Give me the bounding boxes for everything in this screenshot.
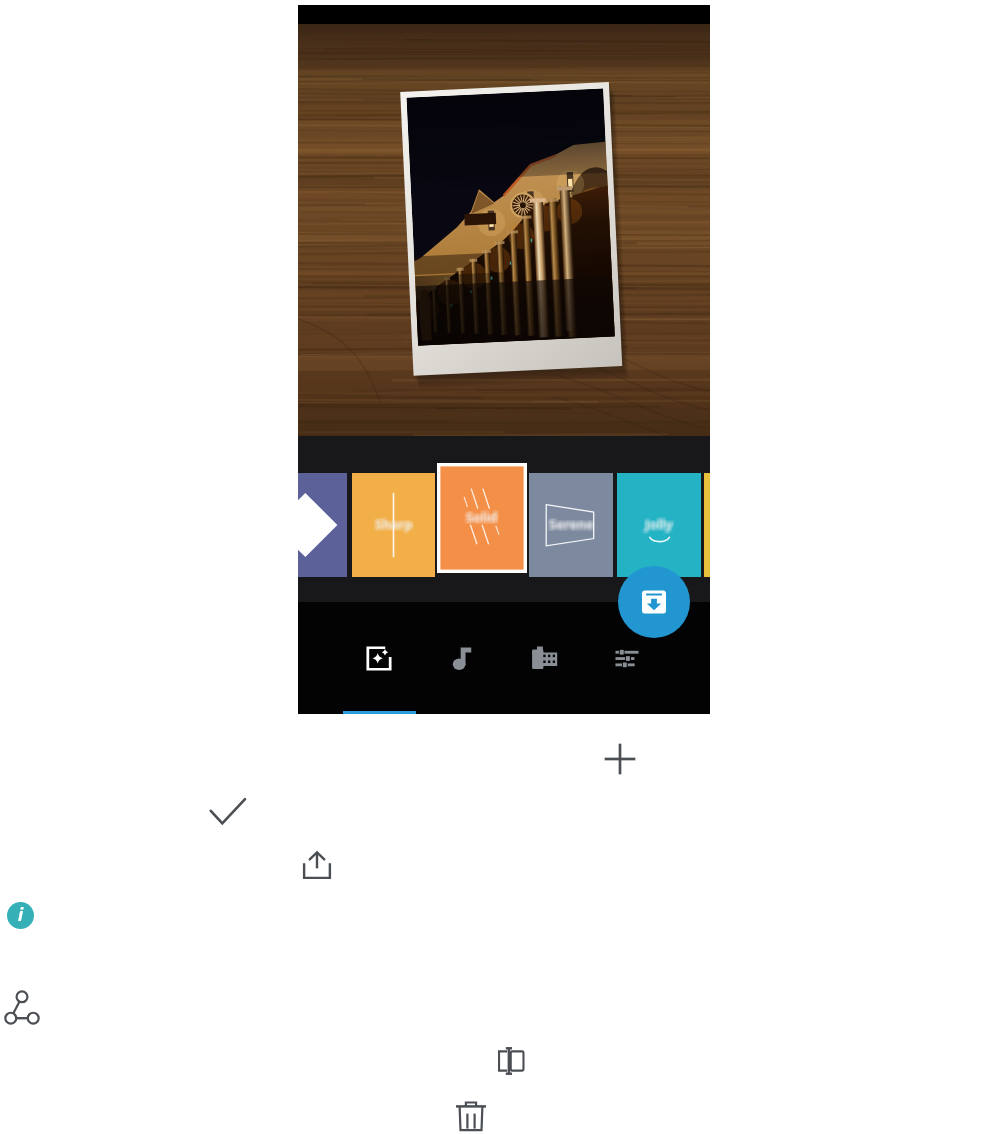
staticText: Solid — [464, 509, 496, 527]
staticText: Sharp — [376, 514, 414, 532]
button[interactable]: Info — [7, 902, 34, 929]
staticText: Sharp — [374, 514, 412, 532]
staticText: Sharp — [373, 515, 411, 533]
staticText: Serene — [549, 514, 594, 532]
staticText: Sharp — [374, 517, 412, 535]
staticText: Jolly — [646, 515, 674, 533]
staticText: Jolly — [645, 513, 673, 531]
staticText: Jolly — [646, 514, 674, 532]
staticText: Jolly — [644, 516, 672, 534]
button[interactable]: Done — [210, 798, 246, 834]
staticText: Solid — [466, 509, 498, 527]
button[interactable]: Adjust — [586, 602, 668, 714]
staticText: Solid — [468, 510, 500, 528]
staticText: Solid — [468, 508, 500, 526]
staticText: Sharp — [377, 516, 415, 534]
staticText: Solid — [464, 510, 496, 528]
staticText: Sharp — [373, 514, 411, 532]
staticText: Sharp — [374, 515, 412, 533]
staticText: Sharp — [377, 513, 415, 531]
staticText: Jolly — [643, 515, 671, 533]
staticText: Solid — [465, 508, 497, 526]
staticText: Sharp — [377, 515, 415, 533]
button[interactable]: Share — [303, 851, 331, 879]
staticText: Solid — [467, 509, 499, 527]
button[interactable]: Serene — [529, 473, 613, 577]
staticText: Solid — [467, 507, 499, 525]
staticText: Jolly — [645, 517, 673, 535]
staticText: Solid — [465, 506, 497, 524]
button[interactable]: Sharp — [352, 473, 435, 577]
button[interactable]: Gallery — [503, 602, 585, 714]
button[interactable]: Music — [421, 602, 503, 714]
staticText: Solid — [467, 506, 499, 524]
staticText: Jolly — [643, 517, 671, 535]
staticText: Jolly — [643, 516, 671, 534]
staticText: Serene — [551, 513, 596, 531]
button[interactable]: Save — [618, 566, 690, 638]
button[interactable]: Flip — [498, 1048, 524, 1074]
staticText: Sharp — [377, 514, 415, 532]
staticText: Jolly — [645, 515, 673, 533]
staticText: Sharp — [377, 517, 415, 535]
button[interactable]: Vivid — [298, 473, 347, 577]
staticText: Jolly — [647, 513, 675, 531]
staticText: Solid — [466, 508, 498, 526]
staticText: Jolly — [647, 516, 675, 534]
staticText: Jolly — [644, 514, 672, 532]
staticText: Jolly — [645, 514, 673, 532]
staticText: Serene — [550, 513, 595, 531]
staticText: Serene — [550, 517, 595, 535]
staticText: Sharp — [375, 513, 413, 531]
staticText: Serene — [549, 513, 594, 531]
staticText: Serene — [551, 517, 596, 535]
staticText: Jolly — [645, 516, 673, 534]
button[interactable]: Add — [604, 743, 636, 775]
staticText: Sharp — [375, 515, 413, 533]
staticText: Solid — [467, 510, 499, 528]
staticText: Serene — [548, 517, 593, 535]
staticText: Solid — [466, 510, 498, 528]
staticText: Jolly — [644, 515, 672, 533]
staticText: Solid — [465, 510, 497, 528]
staticText: Sharp — [376, 517, 414, 535]
staticText: Sharp — [373, 516, 411, 534]
staticText: Serene — [547, 515, 592, 533]
staticText: Solid — [464, 507, 496, 525]
button[interactable]: Share link — [5, 991, 39, 1025]
staticText: Serene — [551, 516, 596, 534]
staticText: Serene — [548, 515, 593, 533]
staticText: Serene — [549, 515, 594, 533]
staticText: Jolly — [646, 517, 674, 535]
staticText: Jolly — [647, 514, 675, 532]
staticText: Jolly — [644, 513, 672, 531]
staticText: Solid — [464, 508, 496, 526]
staticText: Solid — [468, 506, 500, 524]
staticText: Jolly — [644, 517, 672, 535]
button[interactable]: Jolly — [617, 473, 701, 577]
staticText: Serene — [547, 514, 592, 532]
staticText: Jolly — [643, 514, 671, 532]
button[interactable]: Delete — [456, 1101, 486, 1131]
staticText: Jolly — [647, 515, 675, 533]
button[interactable]: Edit — [338, 602, 420, 714]
staticText: Sharp — [374, 516, 412, 534]
staticText: Sharp — [376, 516, 414, 534]
staticText: Solid — [466, 506, 498, 524]
button[interactable]: Solid — [437, 463, 527, 573]
staticText: Jolly — [643, 513, 671, 531]
staticText: Solid — [466, 507, 498, 525]
